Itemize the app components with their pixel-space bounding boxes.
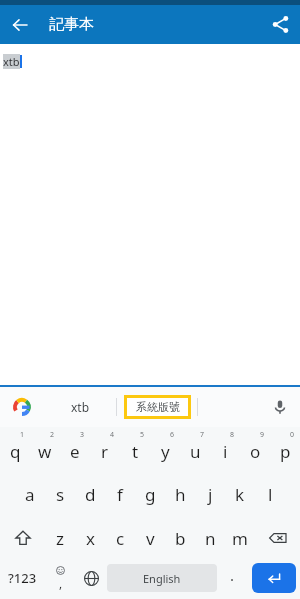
button[interactable]: v	[135, 517, 165, 559]
button[interactable]: x	[75, 517, 105, 559]
button[interactable]: c	[105, 517, 135, 559]
button[interactable]: k	[225, 472, 255, 517]
button[interactable]: h	[165, 472, 195, 517]
staticText: e	[70, 440, 80, 463]
button[interactable]: Google	[0, 387, 44, 427]
staticText: p	[280, 440, 291, 463]
button[interactable]: g	[135, 472, 165, 517]
button[interactable]: Share	[261, 5, 300, 44]
button[interactable]: w	[30, 427, 60, 472]
button[interactable]: o	[240, 427, 270, 472]
button[interactable]: d	[75, 472, 105, 517]
button[interactable]: Enter	[252, 563, 296, 593]
staticText: 記事本	[49, 15, 94, 34]
staticText: w	[38, 440, 52, 463]
button[interactable]: r	[90, 427, 120, 472]
staticText: q	[10, 440, 21, 463]
button[interactable]: l	[255, 472, 285, 517]
staticText: v	[146, 527, 155, 550]
staticText: 系統版號	[136, 400, 180, 414]
button[interactable]: y	[150, 427, 180, 472]
button[interactable]: .	[217, 559, 248, 597]
staticText: n	[205, 527, 216, 550]
button[interactable]: j	[195, 472, 225, 517]
button[interactable]: u	[180, 427, 210, 472]
button[interactable]: a	[15, 472, 45, 517]
button[interactable]: i	[210, 427, 240, 472]
staticText: d	[85, 483, 96, 506]
button[interactable]: xtb	[44, 387, 116, 427]
staticText: g	[145, 483, 156, 506]
button[interactable]: m	[225, 517, 255, 559]
button[interactable]: s	[45, 472, 75, 517]
staticText: a	[25, 483, 35, 506]
staticText: h	[175, 483, 186, 506]
button[interactable]: Change keyboard language	[76, 559, 107, 597]
staticText: z	[56, 527, 64, 550]
button[interactable]: b	[165, 517, 195, 559]
button[interactable]: t	[120, 427, 150, 472]
button[interactable]: e	[60, 427, 90, 472]
staticText: i	[223, 440, 228, 463]
button[interactable]: Emoji and comma	[45, 559, 76, 597]
staticText: 8	[230, 430, 235, 440]
button[interactable]: n	[195, 517, 225, 559]
staticText: k	[235, 483, 245, 506]
staticText: u	[190, 440, 201, 463]
staticText: xtb	[71, 399, 90, 415]
button[interactable]: Back	[0, 5, 39, 44]
button[interactable]: ?123	[0, 559, 45, 597]
button[interactable]: Backspace	[255, 517, 300, 559]
button[interactable]: p	[270, 427, 300, 472]
button[interactable]: 系統版號	[117, 387, 197, 427]
button[interactable]: q	[0, 427, 30, 472]
staticText: ,	[59, 575, 63, 591]
staticText: 7	[200, 430, 205, 440]
staticText: 3	[80, 430, 85, 440]
staticText: 6	[170, 430, 175, 440]
button[interactable]: Voice input	[260, 387, 300, 427]
button[interactable]: z	[45, 517, 75, 559]
staticText: 0	[290, 430, 295, 440]
staticText: ?123	[8, 569, 37, 587]
staticText: r	[101, 440, 109, 463]
staticText: 9	[260, 430, 265, 440]
staticText: 2	[50, 430, 55, 440]
staticText: 1	[20, 430, 25, 440]
staticText: c	[116, 527, 125, 550]
button[interactable]: English	[107, 564, 217, 592]
staticText: 5	[140, 430, 145, 440]
staticText: f	[117, 483, 123, 506]
staticText: j	[208, 483, 213, 506]
staticText: x	[86, 527, 95, 550]
button[interactable]: f	[105, 472, 135, 517]
staticText: b	[175, 527, 186, 550]
button[interactable]: Shift	[0, 517, 45, 559]
staticText: xtb	[3, 54, 20, 69]
staticText: o	[250, 440, 261, 463]
staticText: s	[56, 483, 65, 506]
staticText: l	[268, 483, 273, 506]
staticText: t	[132, 440, 139, 463]
staticText: English	[143, 571, 181, 586]
staticText: y	[161, 440, 170, 463]
staticText: 4	[110, 430, 115, 440]
staticText: .	[230, 565, 235, 585]
staticText: m	[232, 527, 248, 550]
